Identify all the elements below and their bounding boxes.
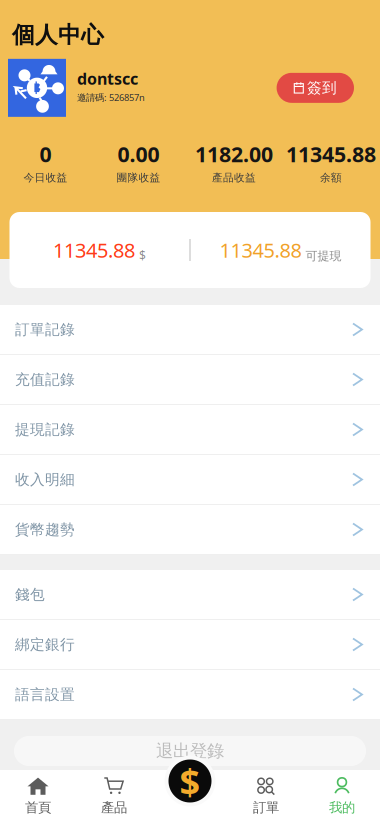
staticText: 邀請碼: 526857n [77,91,145,103]
staticText: 語言設置 [15,685,75,703]
staticText: 退出登錄 [156,740,224,762]
button[interactable]: 訂單 [228,770,304,822]
staticText: 訂單記錄 [15,320,75,338]
staticText: 11345.88 [53,237,135,263]
staticText: 充值記錄 [15,370,75,388]
staticText: 11345.88 [286,140,376,168]
staticText: 錢包 [15,585,45,603]
staticText: 提現記錄 [15,420,75,438]
staticText: 今日收益 [23,171,67,184]
staticText: 收入明細 [15,470,75,488]
button[interactable]: 訂單記錄 [0,305,380,355]
button[interactable]: 簽到 [277,73,354,103]
staticText: 個人中心 [12,21,104,49]
staticText: 貨幣趨勢 [15,520,75,538]
staticText: 可提現 [305,248,341,263]
staticText: 訂單 [253,799,279,816]
button[interactable]: 產品 [76,770,152,822]
button[interactable]: 語言設置 [0,670,380,720]
staticText: 1182.00 [195,140,273,168]
staticText: 余額 [320,171,342,184]
staticText: 團隊收益 [116,171,160,184]
button[interactable]: 貨幣趨勢 [0,505,380,555]
button[interactable]: 退出登錄 [14,736,366,766]
button[interactable]: Deposit [164,755,215,806]
button[interactable]: 收入明細 [0,455,380,505]
staticText: 11345.88 [219,237,301,263]
button[interactable]: 我的 [304,770,380,822]
staticText: 產品 [101,799,127,816]
button[interactable]: 充值記錄 [0,355,380,405]
staticText: 簽到 [307,79,337,97]
staticText: 0.00 [117,140,159,168]
staticText: 綁定銀行 [15,635,75,653]
staticText: $ [139,247,146,263]
button[interactable]: 綁定銀行 [0,620,380,670]
button[interactable]: 首頁 [0,770,76,822]
staticText: 我的 [329,799,355,816]
staticText: $ [179,757,200,805]
staticText: 產品收益 [212,171,256,184]
button[interactable]: 提現記錄 [0,405,380,455]
button[interactable]: 錢包 [0,570,380,620]
staticText: 0 [39,140,51,168]
staticText: 首頁 [25,799,51,816]
staticText: dontscc [77,68,138,89]
